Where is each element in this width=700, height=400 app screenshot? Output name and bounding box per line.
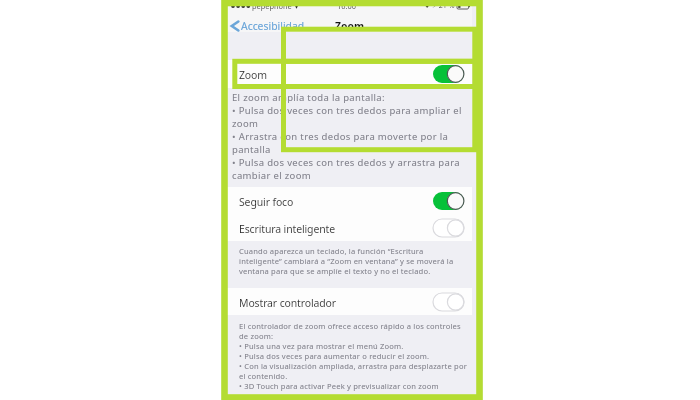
staticText: Zoom xyxy=(335,19,365,33)
staticText: • Pulsa dos veces con tres dedos para am… xyxy=(232,104,462,117)
staticText: zoom xyxy=(232,117,259,130)
button[interactable]: Seguir foco xyxy=(227,187,472,214)
staticText: 16:00 xyxy=(337,1,356,11)
staticText: • Arrastra con tres dedos para moverte p… xyxy=(232,130,449,143)
staticText: ventana para que se amplíe el texto y no… xyxy=(239,266,431,276)
staticText: cambiar el zoom xyxy=(232,169,312,182)
staticText: • 3D Touch para activar Peek y previsual… xyxy=(239,381,439,391)
staticText: ▾ xyxy=(295,3,299,10)
staticText: inteligente” cambiará a “Zoom en ventana… xyxy=(239,256,454,266)
staticText: • Pulsa dos veces para aumentar o reduci… xyxy=(239,351,430,361)
staticText: pantalla xyxy=(232,143,271,156)
staticText: de zoom: xyxy=(239,331,274,341)
button[interactable]: Mostrar controlador xyxy=(227,288,472,315)
button[interactable]: Escritura inteligente xyxy=(227,214,472,241)
button[interactable]: Zoom xyxy=(227,60,472,88)
other: Back to Accesibilidad xyxy=(231,20,239,32)
staticText: pepephone xyxy=(252,1,292,11)
staticText: El controlador de zoom ofrece acceso ráp… xyxy=(239,321,461,331)
staticText: • Pulsa una vez para mostrar el menú Zoo… xyxy=(239,341,404,351)
staticText: ♥ ⚡ 21 % xyxy=(424,1,455,11)
staticText: Cuando aparezca un teclado, la función “… xyxy=(239,246,424,256)
staticText: Escritura inteligente xyxy=(239,222,335,236)
staticText: Mostrar controlador xyxy=(239,296,337,310)
button[interactable]: Back to Accesibilidad xyxy=(231,19,305,33)
staticText: el contenido. xyxy=(239,371,288,381)
staticText: Seguir foco xyxy=(239,195,294,209)
staticText: El zoom amplía toda la pantalla: xyxy=(232,91,385,104)
staticText: Accesibilidad xyxy=(241,19,305,33)
staticText: Zoom xyxy=(239,68,267,82)
staticText: • Pulsa dos veces con tres dedos y arras… xyxy=(232,156,460,169)
staticText: • Con la visualización ampliada, arrastr… xyxy=(239,361,468,371)
